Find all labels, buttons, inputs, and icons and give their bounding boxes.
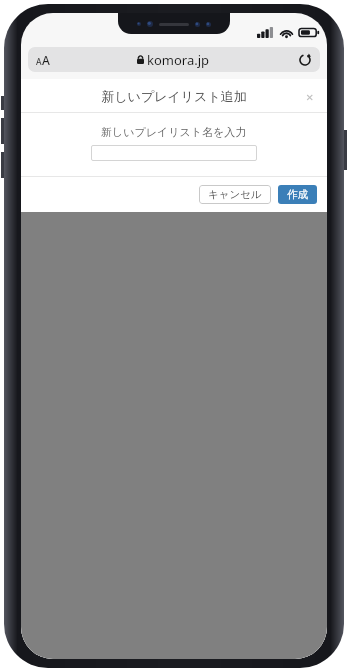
- button[interactable]: Text size: [28, 47, 320, 72]
- staticText: キャンセル: [208, 188, 262, 201]
- button[interactable]: Close: [302, 88, 318, 104]
- button[interactable]: 作成: [278, 185, 317, 204]
- button[interactable]: [91, 145, 257, 161]
- button[interactable]: Reload: [298, 53, 312, 67]
- staticText: 作成: [287, 188, 308, 201]
- staticText: A: [42, 52, 50, 68]
- staticText: komora.jp: [147, 51, 210, 69]
- staticText: 新しいプレイリスト名を入力: [101, 125, 247, 139]
- staticText: A: [36, 56, 42, 68]
- staticText: ×: [306, 88, 314, 104]
- staticText: こもらめもりぃを: [117, 208, 232, 226]
- staticText: 新しいプレイリスト追加: [101, 88, 247, 104]
- button[interactable]: Text size: [36, 52, 50, 68]
- button[interactable]: キャンセル: [199, 185, 271, 204]
